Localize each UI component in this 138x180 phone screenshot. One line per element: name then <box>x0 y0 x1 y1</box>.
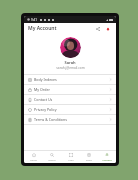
staticText: Body Indexes <box>34 77 57 82</box>
button[interactable]: Privacy Policy <box>24 105 116 114</box>
staticText: Diary <box>86 158 92 161</box>
staticText: My Account <box>28 25 57 32</box>
button[interactable]: Body Indexes <box>24 75 116 84</box>
button[interactable]: Scan <box>62 151 79 163</box>
staticText: Terms & Conditions <box>34 117 67 122</box>
staticText: Account <box>102 158 112 161</box>
button[interactable]: Search <box>43 151 60 163</box>
staticText: Sarah <box>64 60 76 65</box>
button[interactable]: Notifications <box>104 25 112 33</box>
staticText: My Order <box>34 87 50 92</box>
staticText: sarah.j@email.com <box>56 66 85 70</box>
button[interactable]: Diary <box>80 151 97 163</box>
button[interactable]: Profile photo <box>60 37 81 58</box>
button[interactable]: Terms & Conditions <box>24 115 116 124</box>
button[interactable]: Share <box>94 25 102 33</box>
staticText: Scan <box>68 158 74 161</box>
staticText: Privacy Policy <box>34 107 57 112</box>
staticText: Home <box>30 158 37 161</box>
button[interactable]: Home <box>25 151 42 163</box>
button[interactable]: My Order <box>24 85 116 94</box>
staticText: Search <box>48 158 56 161</box>
staticText: 9:41 <box>31 18 37 22</box>
button[interactable]: Account <box>98 151 115 163</box>
staticText: Contact Us <box>34 97 53 102</box>
button[interactable]: Contact Us <box>24 95 116 104</box>
